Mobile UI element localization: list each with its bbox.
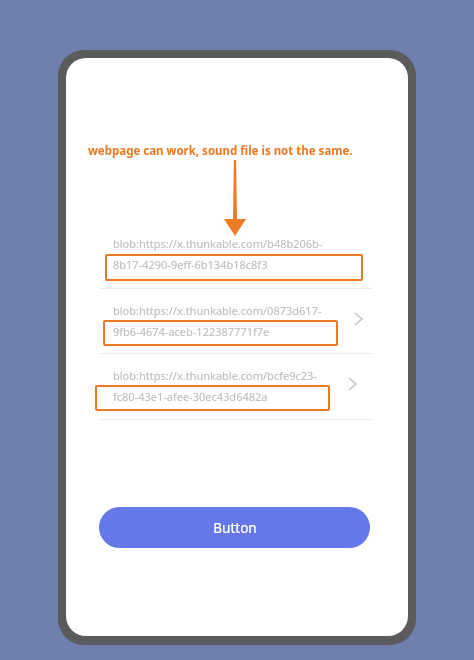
staticText: blob:https://x.thunkable.com/0873d617- <box>113 303 322 318</box>
staticText: fc80-43e1-afee-30ec43d6482a <box>113 389 268 404</box>
staticText: 8b17-4290-9eff-6b134b18c8f3 <box>113 257 268 272</box>
staticText: blob:https://x.thunkable.com/bcfe9c23- <box>113 368 317 383</box>
button[interactable]: blob:https://x.thunkable.com/bcfe9c23- <box>113 368 375 414</box>
staticText: blob:https://x.thunkable.com/b48b206b- <box>113 236 323 251</box>
other: Open link <box>348 377 357 391</box>
staticText: 9fb6-4674-aceb-122387771f7e <box>113 324 270 339</box>
button[interactable]: Button <box>99 507 370 548</box>
button[interactable]: blob:https://x.thunkable.com/0873d617- <box>113 303 375 349</box>
other: Open link <box>354 312 363 326</box>
button[interactable]: blob:https://x.thunkable.com/b48b206b- <box>113 236 375 282</box>
staticText: webpage can work, sound file is not the … <box>88 143 353 159</box>
staticText: Button <box>213 519 257 537</box>
